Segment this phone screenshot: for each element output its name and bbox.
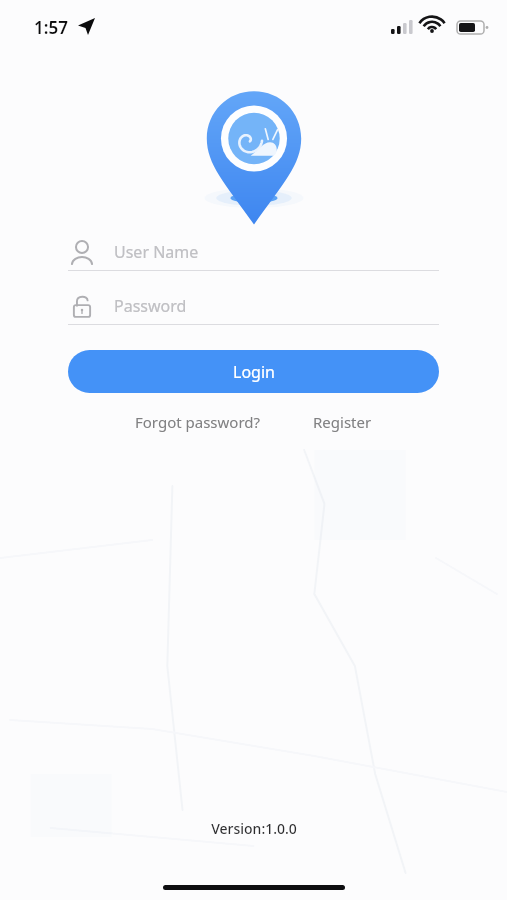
other: User Name: [68, 238, 96, 266]
button[interactable]: Register: [303, 405, 382, 439]
staticText: Forgot password?: [135, 412, 261, 432]
other: Password: [68, 292, 96, 320]
button[interactable]: Forgot password?: [125, 405, 271, 439]
staticText: Register: [313, 412, 372, 432]
staticText: 1:57: [34, 16, 68, 39]
staticText: Password: [114, 295, 187, 317]
button[interactable]: User Name: [68, 234, 439, 270]
button[interactable]: Login: [68, 350, 439, 393]
staticText: Login: [233, 361, 275, 383]
button[interactable]: Password: [68, 288, 439, 324]
staticText: Version:1.0.0: [211, 819, 297, 838]
staticText: User Name: [114, 241, 199, 263]
